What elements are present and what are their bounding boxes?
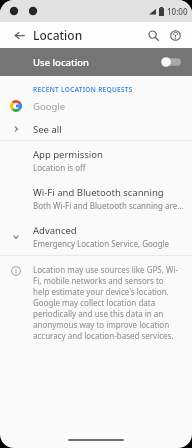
staticText: Advanced <box>33 224 77 237</box>
staticText: See all <box>33 123 62 136</box>
button[interactable]: Use location <box>0 48 192 76</box>
button[interactable]: See all <box>0 118 192 140</box>
button[interactable]: Back <box>11 27 28 44</box>
staticText: Use location <box>33 56 89 69</box>
button[interactable]: Wi-Fi and Bluetooth scanning <box>0 179 192 217</box>
button[interactable]: Google <box>0 94 192 118</box>
staticText: App permission <box>33 148 103 161</box>
staticText: Emergency Location Service, Google Locat… <box>33 238 186 249</box>
staticText: Location <box>33 27 83 43</box>
button[interactable]: Help <box>166 26 184 44</box>
staticText: Both Wi-Fi and Bluetooth scanning are of… <box>33 200 184 211</box>
staticText: Google <box>33 100 66 113</box>
other: Home <box>68 439 124 441</box>
staticText: Location may use sources like GPS, Wi-Fi… <box>33 264 182 341</box>
button[interactable]: App permission <box>0 141 192 179</box>
staticText: Location is off <box>33 162 86 173</box>
staticText: 10:00 <box>167 6 188 17</box>
staticText: Wi-Fi and Bluetooth scanning <box>33 186 164 199</box>
button[interactable]: Advanced <box>0 217 192 255</box>
button[interactable]: Search <box>144 26 162 44</box>
staticText: RECENT LOCATION REQUESTS <box>33 85 133 94</box>
